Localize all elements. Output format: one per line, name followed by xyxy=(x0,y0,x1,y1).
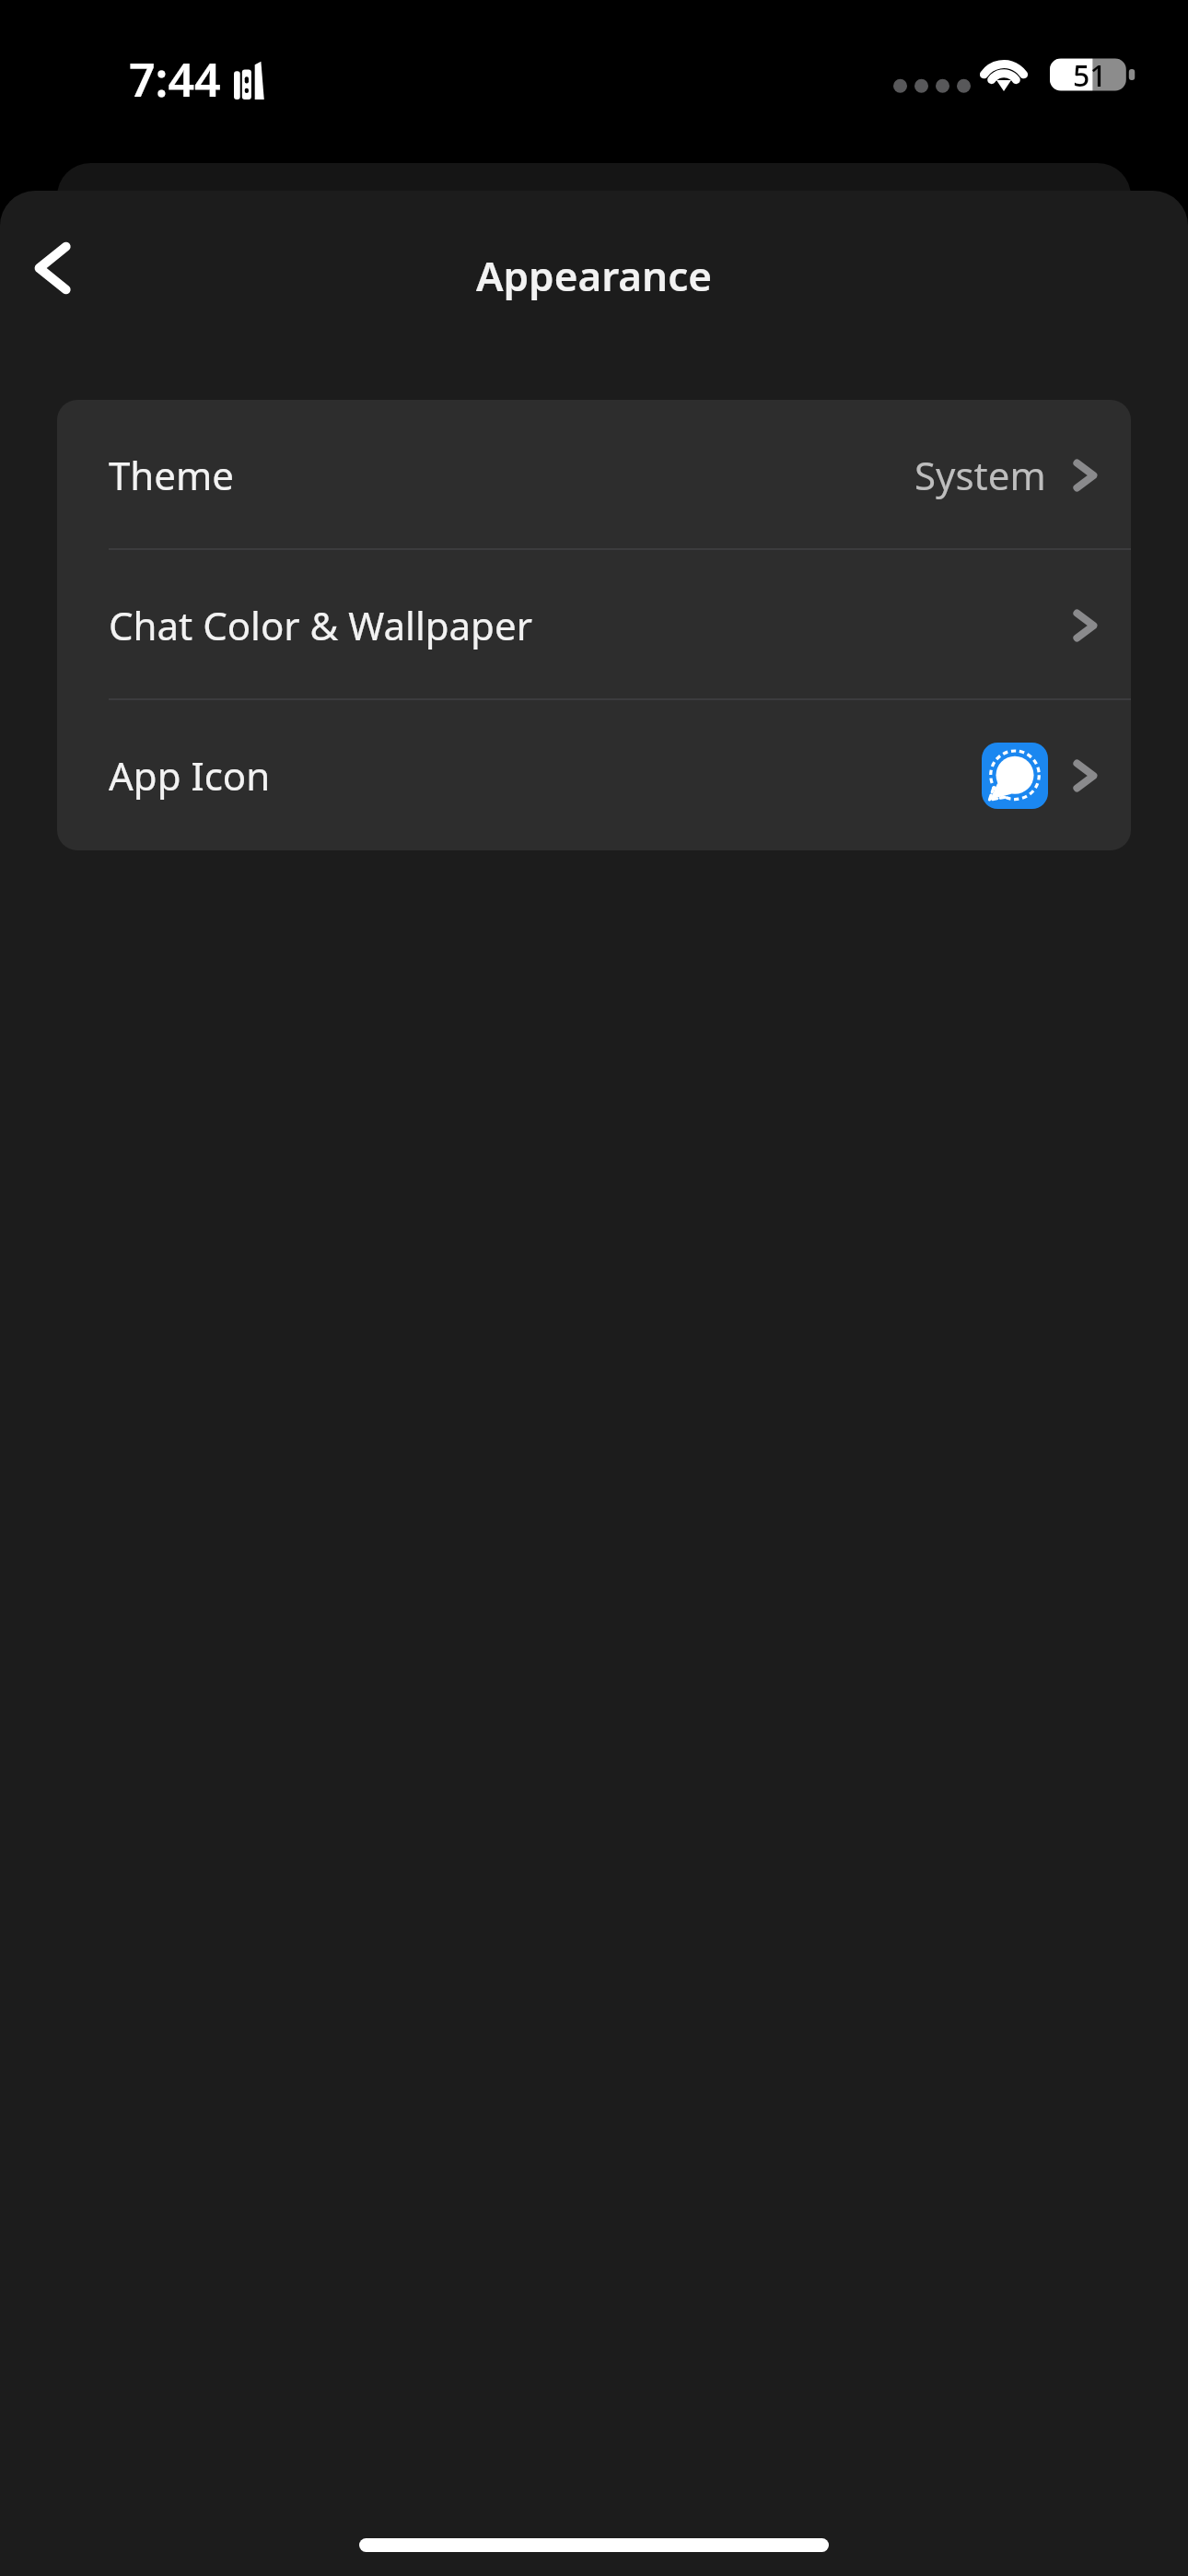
staticText: System xyxy=(914,449,1046,501)
staticText: 51 xyxy=(1073,55,1107,96)
button[interactable]: Back xyxy=(13,228,94,309)
staticText: App Icon xyxy=(109,749,271,802)
staticText: Appearance xyxy=(0,248,1188,303)
staticText: 7:44 xyxy=(129,48,221,111)
button[interactable]: Theme xyxy=(57,400,1131,550)
staticText: Theme xyxy=(109,449,234,501)
staticText: Chat Color & Wallpaper xyxy=(109,599,532,651)
button[interactable]: Chat Color & Wallpaper xyxy=(57,550,1131,700)
button[interactable]: App Icon xyxy=(57,700,1131,850)
